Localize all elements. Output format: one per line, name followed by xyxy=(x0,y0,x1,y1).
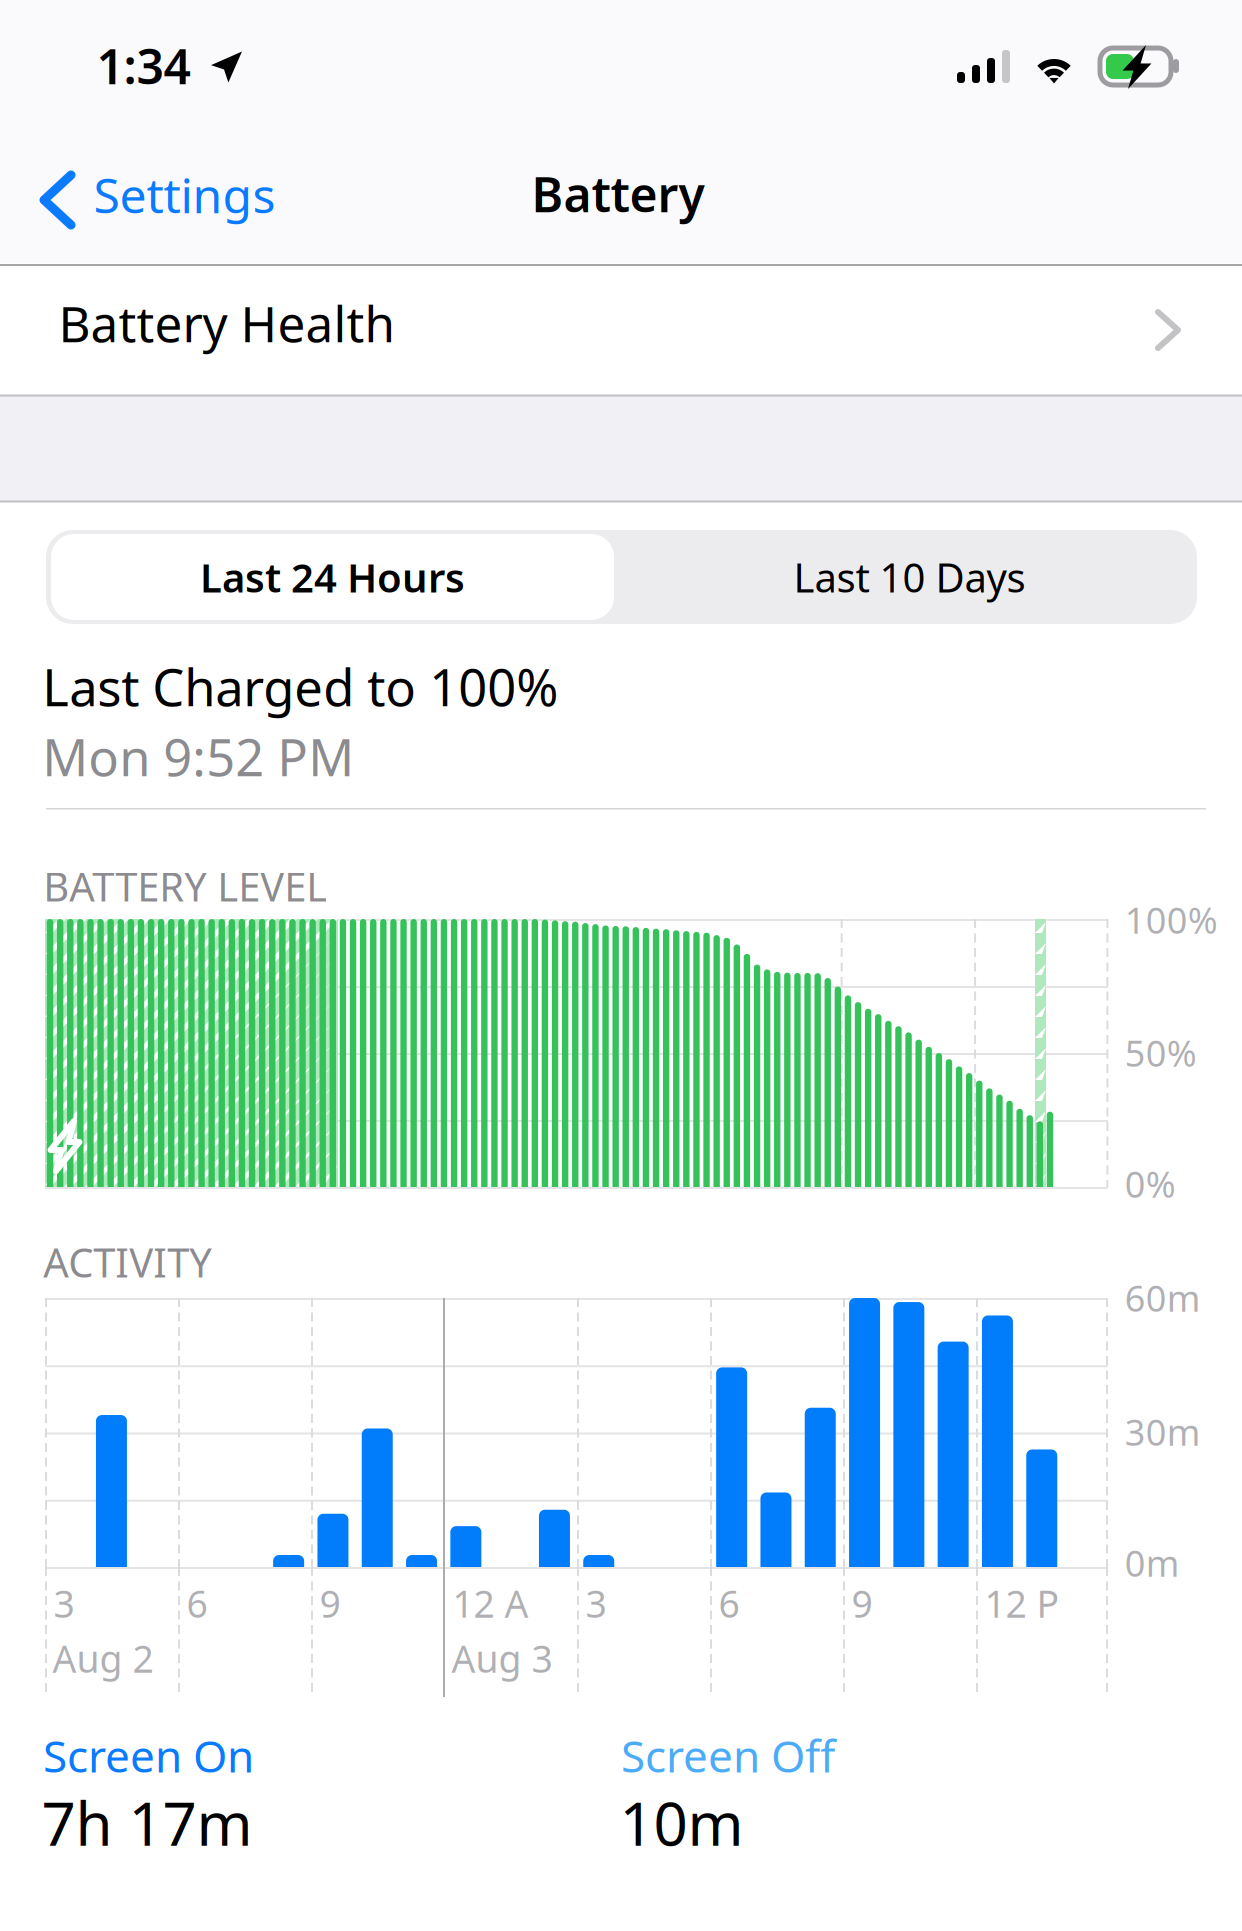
button[interactable]: Last 10 Days xyxy=(622,530,1197,624)
button[interactable]: Settings xyxy=(0,148,290,248)
staticText: 100% xyxy=(1125,896,1218,944)
staticText: Aug 3 xyxy=(451,1633,552,1683)
staticText: 1:34 xyxy=(96,34,190,97)
staticText: 12 A xyxy=(452,1578,528,1628)
staticText: Last 10 Days xyxy=(793,550,1025,603)
staticText: 0% xyxy=(1125,1160,1176,1208)
staticText: ACTIVITY xyxy=(43,1235,212,1289)
staticText: 6 xyxy=(718,1578,739,1628)
staticText: BATTERY LEVEL xyxy=(43,859,327,913)
staticText: 3 xyxy=(53,1578,74,1628)
staticText: 50% xyxy=(1125,1029,1197,1077)
staticText: 10m xyxy=(619,1783,743,1862)
staticText: 12 P xyxy=(984,1578,1059,1628)
staticText: Battery xyxy=(531,162,704,225)
staticText: Screen On xyxy=(43,1726,254,1785)
staticText: Mon 9:52 PM xyxy=(42,723,354,790)
staticText: Battery Health xyxy=(58,290,394,356)
button[interactable]: Screen Off xyxy=(625,1728,1065,1878)
staticText: 9 xyxy=(319,1578,340,1628)
staticText: 30m xyxy=(1125,1408,1201,1456)
staticText: 3 xyxy=(585,1578,606,1628)
button[interactable]: Battery Health xyxy=(0,264,1242,394)
staticText: 9 xyxy=(851,1578,872,1628)
staticText: Last Charged to 100% xyxy=(42,653,558,720)
staticText: 6 xyxy=(186,1578,207,1628)
staticText: 60m xyxy=(1125,1274,1201,1322)
staticText: Settings xyxy=(93,163,275,226)
button[interactable]: Screen On xyxy=(47,1728,487,1878)
staticText: 7h 17m xyxy=(41,1783,252,1862)
staticText: Last 24 Hours xyxy=(200,550,465,603)
staticText: Aug 2 xyxy=(52,1633,153,1683)
staticText: Screen Off xyxy=(621,1726,835,1785)
staticText: 0m xyxy=(1125,1539,1180,1587)
button[interactable]: Last 24 Hours xyxy=(49,532,616,622)
